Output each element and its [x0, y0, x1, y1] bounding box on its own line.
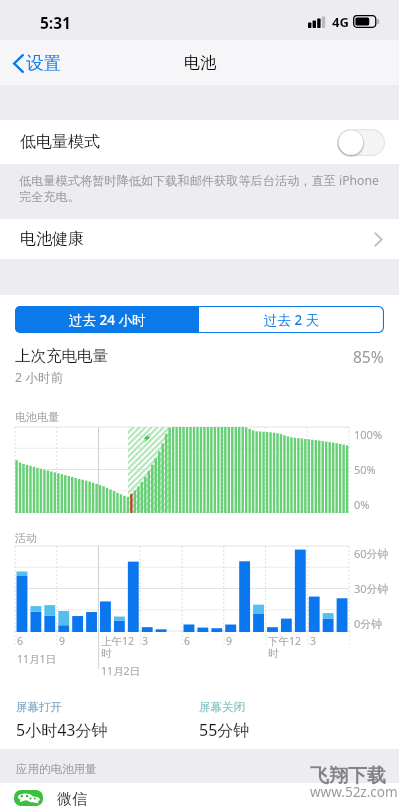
button[interactable]: 过去 24 小时	[15, 306, 199, 333]
staticText: 11月2日	[101, 664, 141, 678]
staticText: 30分钟	[354, 581, 389, 596]
staticText: 55分钟	[199, 719, 250, 741]
staticText: 9	[226, 634, 233, 648]
staticText: 设置	[26, 52, 61, 74]
staticText: 60分钟	[354, 546, 389, 561]
button[interactable]: 低电量模式开关	[337, 129, 385, 156]
staticText: 0%	[354, 497, 370, 512]
staticText: 11月1日	[17, 652, 57, 666]
button[interactable]: 过去 2 天	[199, 306, 384, 333]
button[interactable]: 电池健康	[0, 219, 399, 259]
staticText: 上午12 时	[101, 634, 135, 660]
staticText: 电池电量	[15, 410, 59, 424]
staticText: 5小时43分钟	[16, 719, 108, 741]
staticText: 过去 24 小时	[69, 311, 146, 329]
staticText: 4G	[332, 13, 349, 31]
staticText: 屏幕关闭	[199, 700, 245, 714]
staticText: www.52z.com	[310, 783, 398, 801]
button[interactable]: 微信	[0, 783, 399, 806]
staticText: 低电量模式将暂时降低如下载和邮件获取等后台活动，直至 iPhone 完全充电。	[19, 172, 381, 204]
staticText: 5:31	[40, 12, 71, 33]
button[interactable]: 设置	[0, 46, 73, 80]
staticText: 6	[17, 634, 24, 648]
staticText: 6	[184, 634, 191, 648]
staticText: 9	[59, 634, 66, 648]
staticText: 电池健康	[20, 229, 84, 249]
staticText: 0分钟	[354, 616, 383, 631]
staticText: 3	[310, 634, 317, 648]
staticText: 100%	[354, 427, 383, 442]
staticText: 3	[142, 634, 149, 648]
staticText: 低电量模式	[20, 132, 100, 152]
staticText: 活动	[15, 531, 37, 545]
staticText: 50%	[354, 462, 376, 477]
staticText: 下午12 时	[268, 634, 302, 660]
staticText: 电池	[184, 53, 216, 73]
staticText: 飞翔下载	[310, 764, 386, 788]
staticText: 微信	[57, 790, 87, 806]
staticText: 上次充电电量	[15, 346, 108, 366]
staticText: 过去 2 天	[264, 311, 320, 329]
staticText: 应用的电池用量	[16, 762, 97, 776]
staticText: 85%	[353, 346, 384, 367]
staticText: 2 小时前	[15, 369, 63, 386]
staticText: 屏幕打开	[16, 700, 62, 714]
